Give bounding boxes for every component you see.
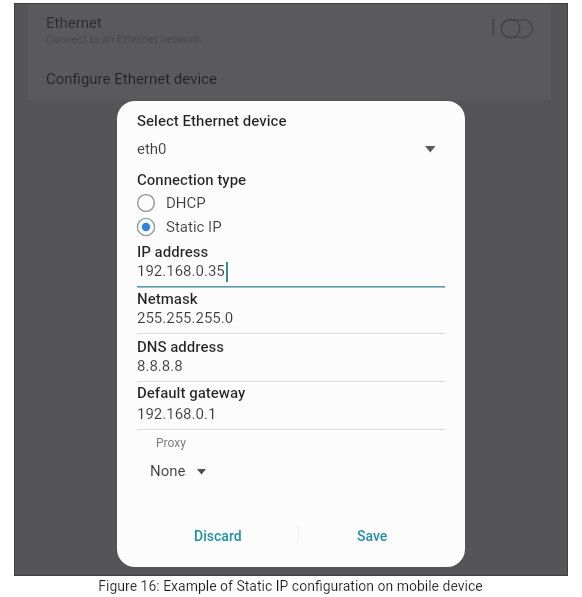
staticText: DHCP [166,194,206,212]
staticText: IP address [137,243,209,261]
button[interactable]: Configure Ethernet device [28,59,554,89]
button[interactable]: eth0 [133,137,449,163]
staticText: None [150,462,186,480]
staticText: DNS address [137,338,225,356]
button[interactable]: Ethernet [28,3,554,53]
staticText: 192.168.0.1 [137,405,217,423]
staticText: 8.8.8.8 [137,357,183,375]
staticText: Default gateway [137,384,246,402]
staticText: Discard [194,528,242,544]
staticText: Netmask [137,290,198,308]
button[interactable]: Discard [166,522,269,550]
staticText: Proxy [156,436,186,450]
button[interactable]: Static IP [135,215,335,240]
staticText: 255.255.255.0 [137,309,234,327]
staticText: Connect to an Ethernet network. [46,33,203,46]
staticText: Configure Ethernet device [46,70,217,88]
button[interactable]: None [143,459,259,485]
staticText: Figure 16: Example of Static IP configur… [98,578,483,594]
button[interactable]: DHCP [135,190,335,215]
staticText: Ethernet [46,14,102,32]
button[interactable]: Ethernet toggle [489,15,554,47]
staticText: Select Ethernet device [137,112,287,130]
staticText: Connection type [137,171,247,189]
button[interactable]: Save [321,522,424,550]
staticText: Static IP [166,218,222,236]
staticText: 192.168.0.35 [137,262,225,280]
staticText: Save [357,528,388,544]
staticText: eth0 [137,140,167,158]
